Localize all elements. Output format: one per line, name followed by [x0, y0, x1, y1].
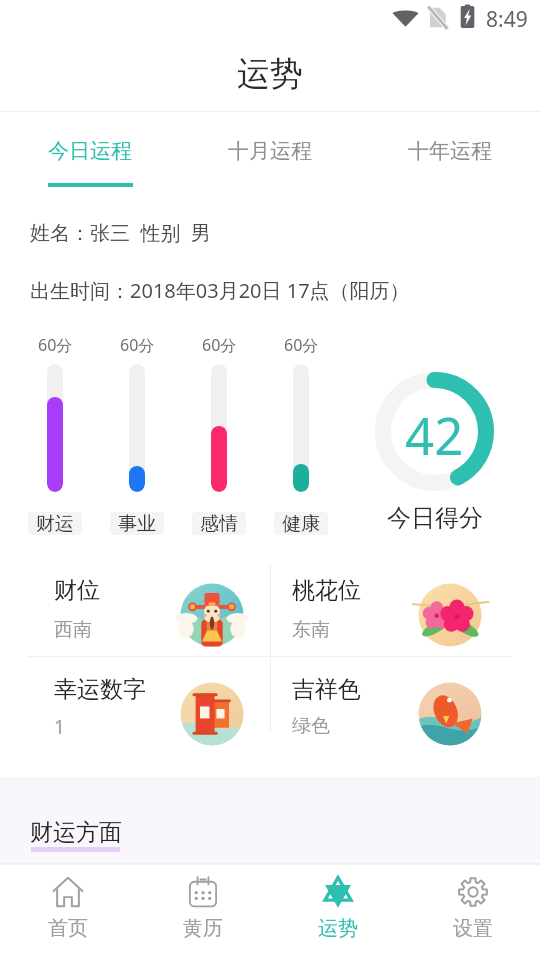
button[interactable]: 运势: [270, 865, 405, 960]
staticText: 姓名：张三 性别 男: [30, 219, 211, 246]
staticText: 桃花位: [292, 576, 361, 605]
staticText: 60分: [284, 334, 319, 356]
button[interactable]: 财位: [0, 557, 269, 656]
button[interactable]: 黄历: [135, 865, 270, 960]
staticText: 黄历: [183, 916, 223, 941]
button[interactable]: 今日运程: [0, 112, 180, 190]
staticText: 42: [405, 400, 464, 469]
staticText: 今日运程: [48, 138, 132, 164]
staticText: 出生时间：2018年03月20日 17点（阳历）: [30, 277, 410, 304]
staticText: 财位: [54, 576, 100, 605]
staticText: 十月运程: [228, 138, 312, 164]
staticText: 感情: [200, 512, 238, 535]
staticText: 运势: [237, 53, 303, 91]
button[interactable]: 十月运程: [180, 112, 360, 190]
staticText: 东南: [292, 618, 330, 642]
staticText: 西南: [54, 618, 92, 642]
staticText: 吉祥色: [292, 675, 361, 704]
staticText: 健康: [282, 512, 320, 535]
button[interactable]: 幸运数字: [0, 657, 269, 765]
staticText: 8:49: [486, 5, 528, 34]
staticText: 今日得分: [387, 503, 483, 533]
staticText: 60分: [38, 334, 73, 356]
staticText: 十年运程: [408, 138, 492, 164]
staticText: 60分: [120, 334, 155, 356]
staticText: 首页: [48, 916, 88, 941]
staticText: 设置: [453, 916, 493, 941]
staticText: 财运: [36, 512, 74, 535]
staticText: 幸运数字: [54, 675, 146, 704]
staticText: 事业: [118, 512, 156, 535]
button[interactable]: 桃花位: [271, 557, 540, 656]
button[interactable]: 吉祥色: [271, 657, 540, 765]
button[interactable]: 首页: [0, 865, 135, 960]
button[interactable]: 十年运程: [360, 112, 540, 190]
staticText: 60分: [202, 334, 237, 356]
button[interactable]: 设置: [405, 865, 540, 960]
staticText: 财运方面: [30, 818, 122, 847]
staticText: 绿色: [292, 714, 330, 738]
staticText: 运势: [318, 916, 358, 941]
staticText: 1: [54, 714, 65, 740]
